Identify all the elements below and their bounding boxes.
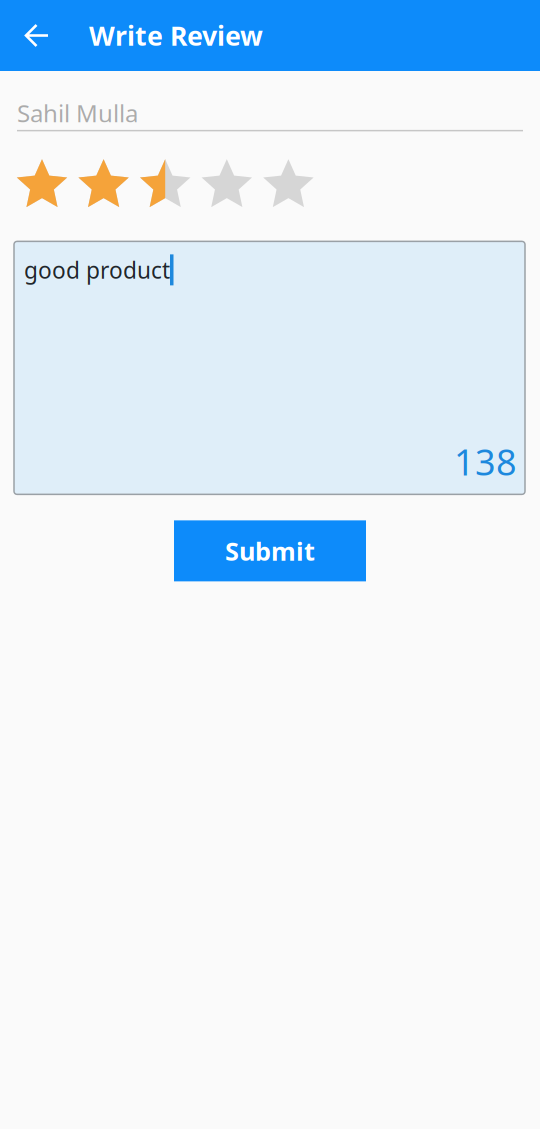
staticText: good product — [24, 255, 170, 285]
staticText: 138 — [454, 438, 517, 485]
button[interactable]: Rate 4 stars — [201, 158, 253, 210]
button[interactable]: Rate 5 stars — [262, 158, 314, 210]
button[interactable]: Rate 1 star — [16, 158, 68, 210]
button[interactable]: Rate 3 stars — [139, 158, 191, 210]
button[interactable]: Sahil Mulla — [17, 97, 523, 131]
staticText: Submit — [225, 534, 315, 568]
button[interactable]: good product — [14, 241, 525, 494]
staticText: Sahil Mulla — [17, 97, 138, 129]
button[interactable]: Submit — [174, 520, 366, 581]
staticText: Write Review — [89, 18, 263, 53]
button[interactable]: Rate 2 stars — [78, 158, 130, 210]
button[interactable]: Back — [13, 11, 61, 59]
